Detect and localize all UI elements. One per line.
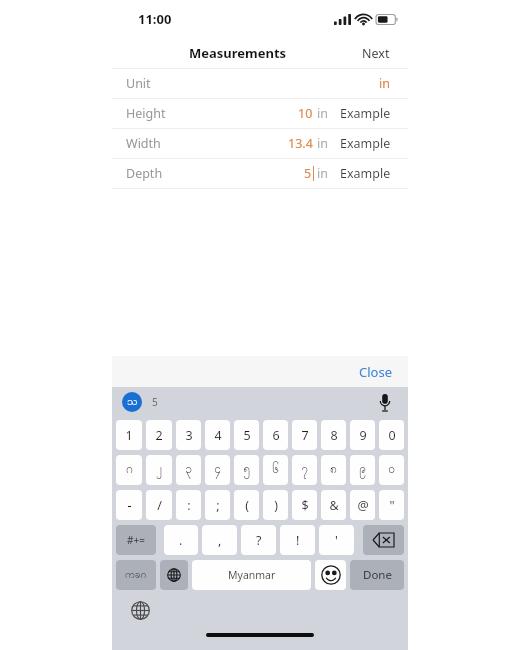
button[interactable]: 4 [205,420,230,450]
staticText: ၃ [185,461,192,479]
staticText: ? [256,532,262,549]
staticText: Height [126,105,166,122]
button[interactable]: ; [205,490,230,520]
staticText: 2 [155,427,163,444]
staticText: in [317,105,328,122]
button[interactable]: ၈ [321,455,346,485]
button[interactable]: ' [319,525,354,555]
staticText: & [329,497,339,514]
button[interactable]: & [321,490,346,520]
staticText: ၉ [359,461,366,479]
button[interactable]: 3 [176,420,201,450]
staticText: Depth [126,165,163,182]
button[interactable]: Done [350,560,404,590]
staticText: : [187,497,191,514]
button[interactable]: 0 [379,420,404,450]
button[interactable]: Next [358,41,394,66]
staticText: သ [127,394,138,410]
button[interactable]: ၉ [350,455,375,485]
staticText: Example [340,135,391,152]
button[interactable]: ကခဂ [116,560,156,590]
staticText: ) [274,497,278,514]
button[interactable]: ၂ [146,455,172,485]
staticText: Example [340,165,391,182]
staticText: . [179,532,183,549]
staticText: Myanmar [228,568,276,582]
button[interactable]: ၇ [292,455,317,485]
button[interactable]: Width [112,129,408,158]
button[interactable]: $ [292,490,317,520]
button[interactable]: 2 [146,420,172,450]
staticText: ၀ [388,461,395,479]
staticText: ၄ [214,461,221,479]
button[interactable]: Backspace [363,525,404,555]
staticText: 0 [388,427,396,444]
staticText: 8 [330,427,338,444]
button[interactable]: Myanmar input [122,392,142,412]
staticText: ( [245,497,249,514]
staticText: in [317,165,328,182]
staticText: / [157,497,162,514]
staticText: 9 [359,427,367,444]
staticText: 5 [152,395,158,409]
button[interactable]: " [379,490,404,520]
button[interactable]: 8 [321,420,346,450]
staticText: ၆ [272,461,279,479]
staticText: ၅ [243,461,250,479]
staticText: Width [126,135,161,152]
staticText: ဂ [126,461,133,479]
staticText: - [127,497,132,514]
button[interactable]: Emoji [315,560,346,590]
staticText: 6 [272,427,280,444]
staticText: in [317,135,328,152]
button[interactable]: @ [350,490,375,520]
staticText: 5 [304,165,312,182]
button[interactable]: ) [263,490,288,520]
staticText: " [389,497,395,514]
button[interactable]: #+= [116,525,156,555]
staticText: ; [216,497,220,514]
button[interactable]: ( [234,490,259,520]
button[interactable]: Switch keyboard language [160,560,188,590]
staticText: 11:00 [138,10,172,28]
button[interactable]: ၃ [176,455,201,485]
staticText: 3 [185,427,193,444]
staticText: 4 [214,427,222,444]
staticText: ကခဂ [125,568,147,583]
button[interactable]: ? [241,525,276,555]
button[interactable]: Depth [112,159,408,188]
staticText: $ [301,497,309,514]
staticText: ၈ [330,461,337,479]
button[interactable]: / [146,490,172,520]
button[interactable]: 9 [350,420,375,450]
staticText: Close [359,363,392,381]
button[interactable]: : [176,490,201,520]
button[interactable]: , [202,525,237,555]
staticText: ၇ [301,461,308,479]
button[interactable]: ၄ [205,455,230,485]
button[interactable]: Height [112,99,408,128]
button[interactable]: Change keyboard [128,598,152,622]
button[interactable]: - [116,490,142,520]
button[interactable]: Close [355,359,396,385]
staticText: 13.4 [288,135,313,152]
button[interactable]: ၀ [379,455,404,485]
button[interactable]: ! [280,525,315,555]
button[interactable]: ဂ [116,455,142,485]
button[interactable]: Unit [112,69,408,98]
staticText: 7 [301,427,309,444]
staticText: Unit [126,75,151,92]
button[interactable]: 5 [234,420,259,450]
button[interactable]: 7 [292,420,317,450]
button[interactable]: Myanmar [192,560,311,590]
staticText: Done [363,567,392,583]
button[interactable]: ၆ [263,455,288,485]
button[interactable]: Voice input [374,391,396,413]
button[interactable]: . [164,525,198,555]
button[interactable]: 1 [116,420,142,450]
staticText: in [379,75,390,92]
button[interactable]: ၅ [234,455,259,485]
staticText: Measurements [189,44,287,62]
staticText: 1 [125,427,133,444]
button[interactable]: 6 [263,420,288,450]
